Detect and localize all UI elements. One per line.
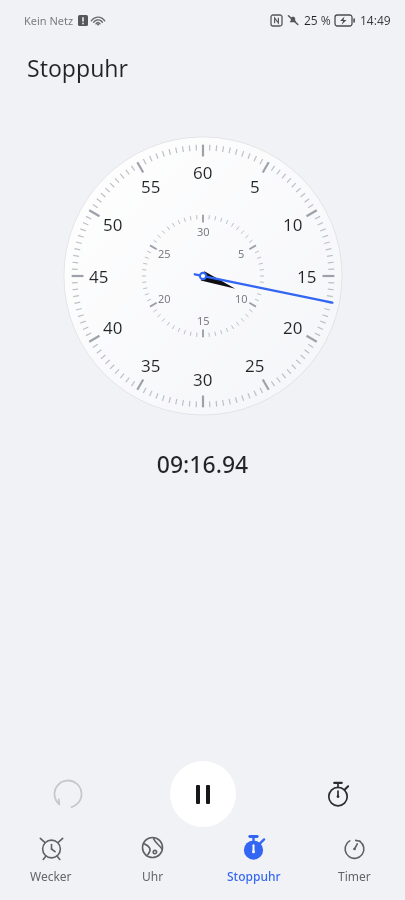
staticText: 25 <box>158 246 171 261</box>
staticText: 25 % <box>304 12 331 28</box>
staticText: 30 <box>197 224 210 239</box>
staticText: Uhr <box>142 868 164 884</box>
staticText: 25 <box>245 354 265 377</box>
staticText: Timer <box>338 868 371 884</box>
button[interactable]: Uhr <box>102 818 203 900</box>
staticText: 30 <box>193 368 213 391</box>
staticText: 50 <box>103 213 123 236</box>
staticText: 15 <box>197 313 210 328</box>
staticText: 45 <box>89 265 109 288</box>
staticText: Stoppuhr <box>227 868 281 884</box>
staticText: Stoppuhr <box>27 52 129 83</box>
staticText: 10 <box>283 213 303 236</box>
staticText: 35 <box>141 354 161 377</box>
staticText: 5 <box>250 175 260 198</box>
button[interactable]: Stoppuhr <box>203 818 304 900</box>
staticText: Wecker <box>30 868 72 884</box>
staticText: 40 <box>103 316 123 339</box>
button[interactable]: Timer <box>304 818 405 900</box>
button[interactable]: Zurücksetzen <box>40 766 96 822</box>
staticText: 15 <box>297 265 317 288</box>
button[interactable]: Pause <box>170 761 236 827</box>
staticText: 10 <box>235 291 248 306</box>
staticText: 20 <box>283 316 303 339</box>
staticText: Kein Netz <box>24 13 74 28</box>
button[interactable]: Wecker <box>0 818 102 900</box>
staticText: 20 <box>158 291 171 306</box>
staticText: 55 <box>141 175 161 198</box>
staticText: 14:49 <box>360 12 391 28</box>
staticText: 09:16.94 <box>0 448 405 479</box>
staticText: 5 <box>238 246 245 261</box>
staticText: 60 <box>193 161 213 184</box>
button[interactable]: Runde <box>310 766 366 822</box>
